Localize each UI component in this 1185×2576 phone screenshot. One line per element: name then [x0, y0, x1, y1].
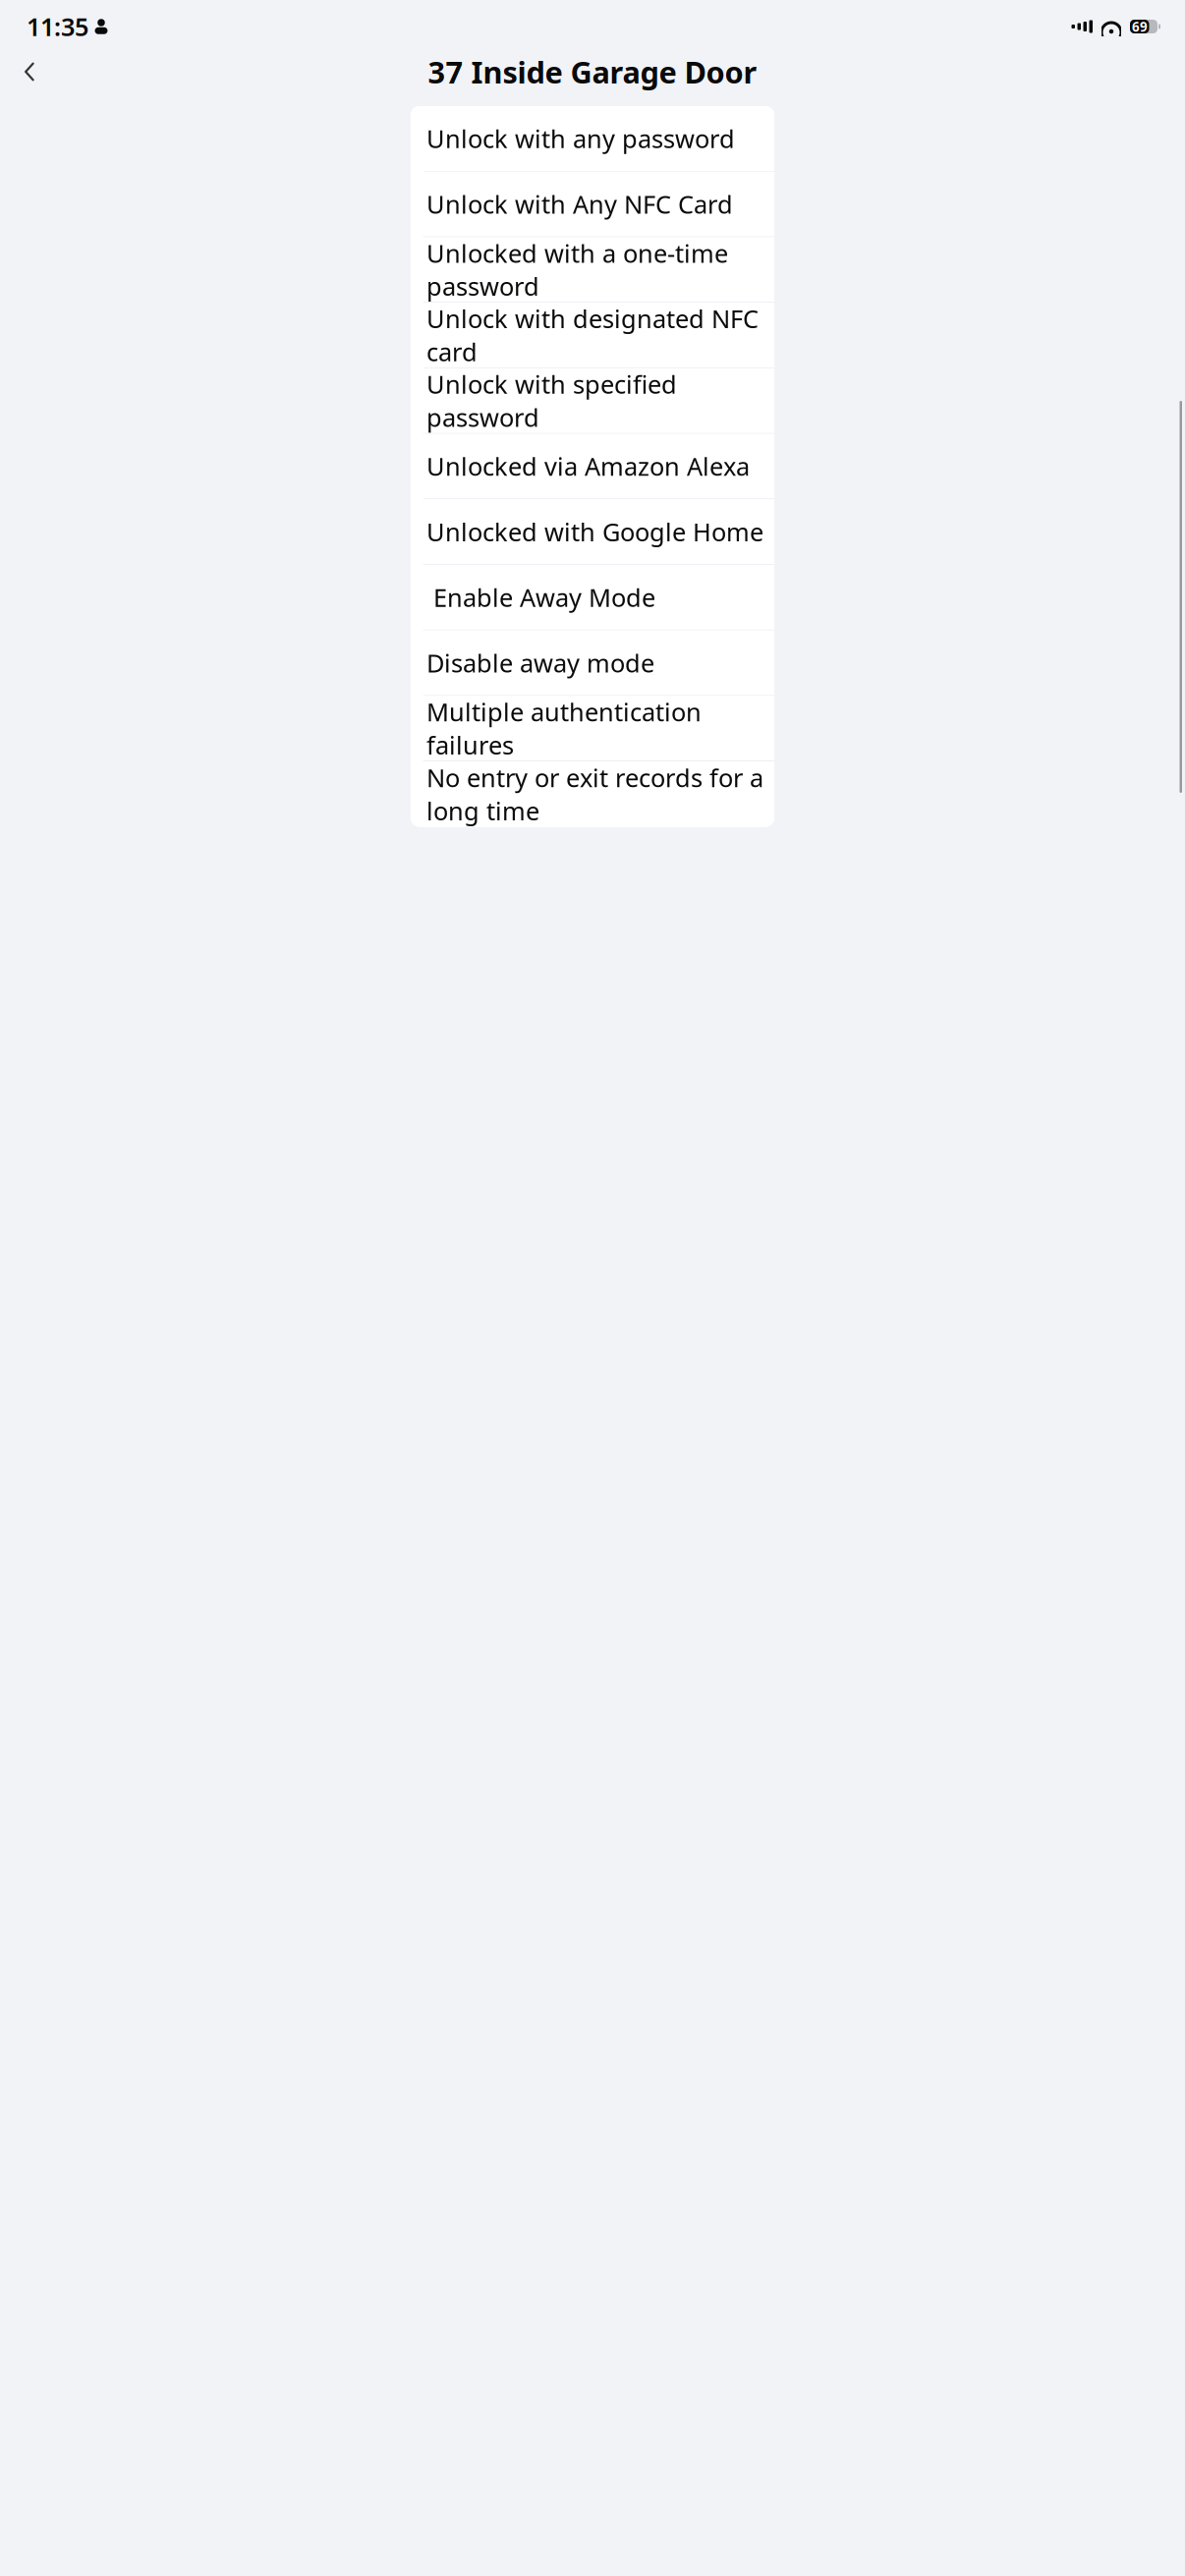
button[interactable]: Unlock with any password: [411, 106, 774, 172]
button[interactable]: Unlock with specified password: [411, 368, 774, 434]
staticText: 69: [1132, 18, 1148, 35]
staticText: Unlocked via Amazon Alexa: [426, 450, 750, 483]
staticText: Multiple authentication failures: [426, 695, 702, 761]
button[interactable]: Unlocked with a one-time password: [411, 237, 774, 303]
button[interactable]: Unlocked with Google Home: [411, 499, 774, 565]
staticText: Unlock with any password: [426, 122, 735, 155]
button[interactable]: No entry or exit records for a long time: [411, 761, 774, 827]
staticText: Unlocked with a one-time password: [426, 237, 728, 303]
button[interactable]: Unlock with designated NFC card: [411, 303, 774, 368]
button[interactable]: Multiple authentication failures: [411, 696, 774, 761]
button[interactable]: Unlocked via Amazon Alexa: [411, 434, 774, 499]
staticText: 37 Inside Garage Door: [428, 52, 757, 92]
button[interactable]: Back: [8, 50, 51, 93]
staticText: Unlock with designated NFC card: [426, 302, 759, 368]
button[interactable]: Disable away mode: [411, 630, 774, 696]
staticText: Unlock with Any NFC Card: [426, 188, 733, 221]
staticText: 11:35: [27, 10, 88, 43]
staticText: Disable away mode: [426, 646, 654, 679]
staticText: Enable Away Mode: [426, 581, 655, 614]
staticText: No entry or exit records for a long time: [426, 761, 763, 827]
button[interactable]: Unlock with Any NFC Card: [411, 172, 774, 237]
staticText: Unlocked with Google Home: [426, 515, 763, 548]
button[interactable]: Enable Away Mode: [411, 565, 774, 630]
staticText: Unlock with specified password: [426, 368, 677, 434]
